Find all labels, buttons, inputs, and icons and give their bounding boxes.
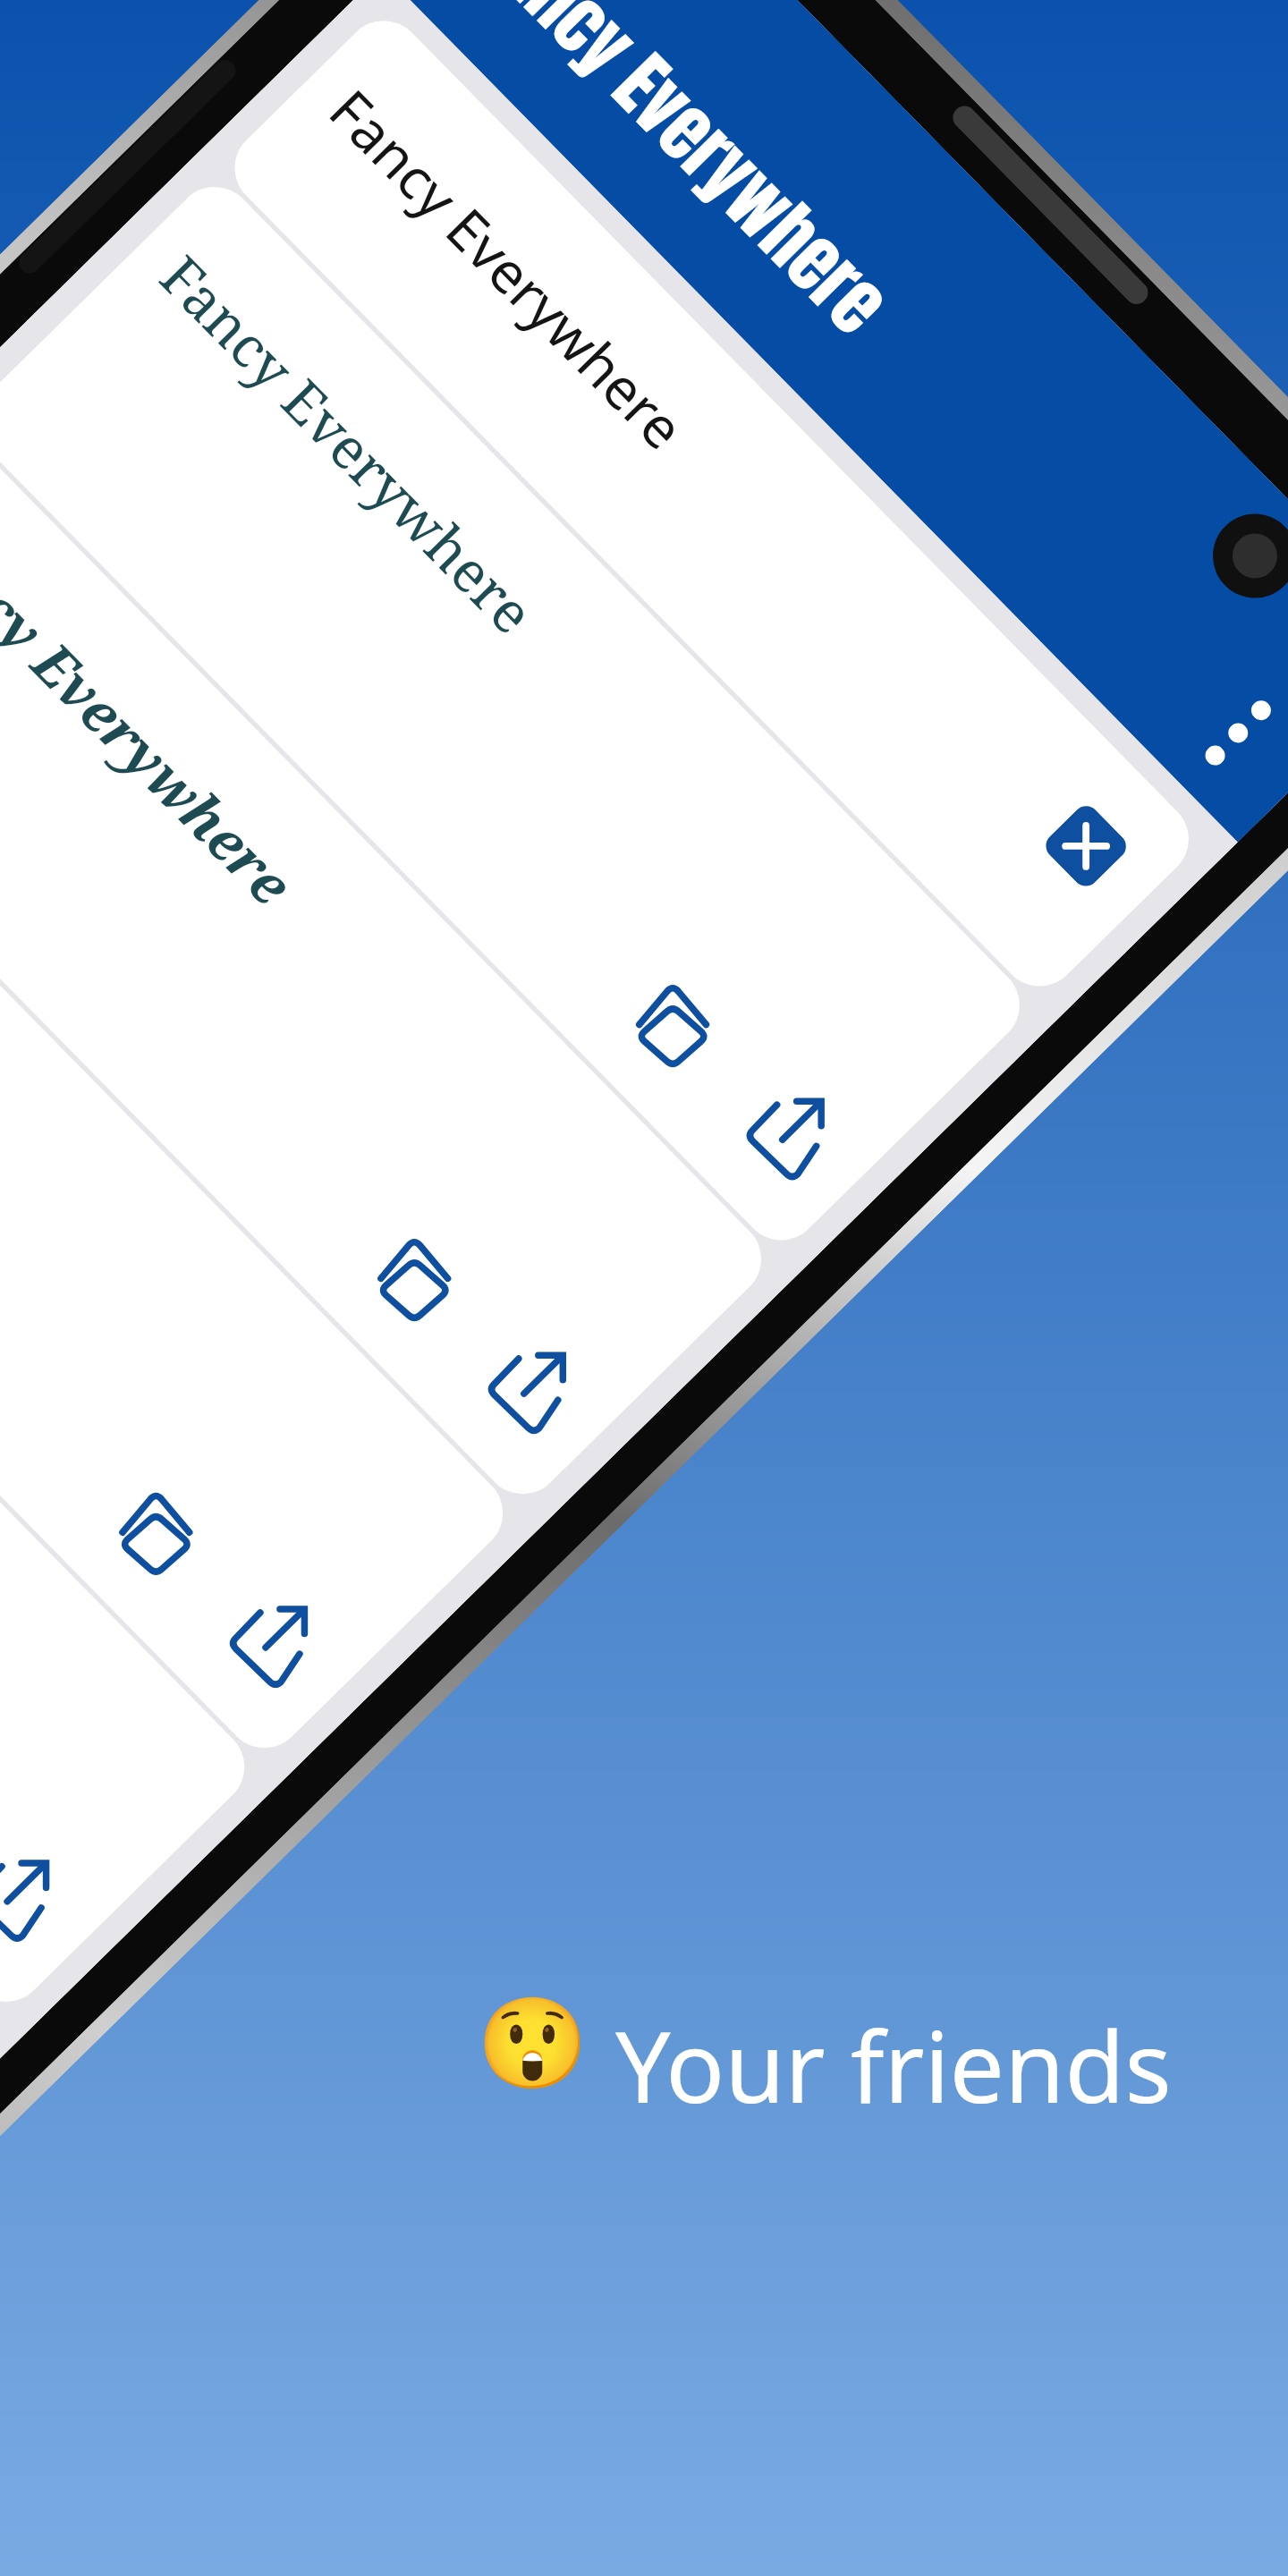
button[interactable]: Copy bbox=[603, 951, 742, 1090]
button[interactable]: Share bbox=[0, 1828, 81, 1968]
button[interactable]: Share bbox=[459, 1321, 598, 1460]
staticText: Fancy Everywhere bbox=[145, 239, 551, 650]
staticText: Fancy Everywhere bbox=[0, 747, 16, 1139]
button[interactable]: Fancy Everywhere bbox=[0, 678, 519, 1764]
button[interactable]: Share bbox=[200, 1574, 340, 1714]
button[interactable]: Fancy Everywhere bbox=[0, 1186, 2, 2272]
button[interactable]: Copy bbox=[345, 1205, 484, 1344]
button[interactable]: Fancy Everywhere bbox=[0, 424, 778, 1510]
button[interactable]: More options bbox=[1201, 696, 1275, 769]
staticText: 😲 bbox=[477, 1991, 589, 2096]
button[interactable]: Share bbox=[717, 1067, 856, 1206]
button[interactable]: Fancy Everywhere bbox=[0, 932, 261, 2018]
staticText: Fancy Everywhere bbox=[0, 493, 309, 921]
button[interactable]: Fancy Everywhere bbox=[0, 171, 1036, 1256]
staticText: Fancy Everywhere bbox=[314, 73, 701, 465]
button[interactable]: Fancy Everywhere bbox=[218, 4, 1205, 1002]
staticText: Fancy Everywhere bbox=[459, 0, 911, 356]
staticText: Your friends bbox=[615, 1998, 1172, 2131]
button[interactable]: Add bbox=[1040, 801, 1131, 892]
button[interactable]: Copy bbox=[86, 1458, 226, 1598]
